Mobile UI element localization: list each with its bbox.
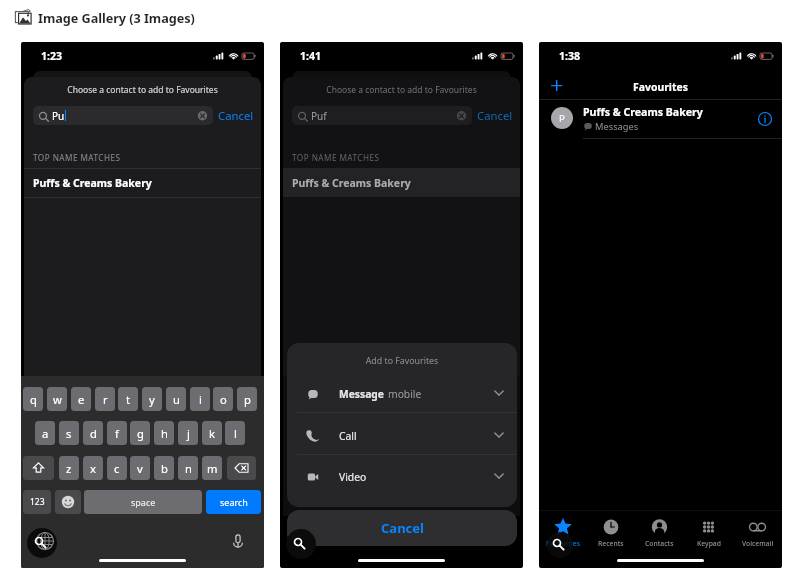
- staticText: Choose a contact to add to Favourites: [283, 84, 520, 96]
- staticText: j: [187, 426, 190, 441]
- staticText: x: [90, 461, 96, 476]
- staticText: Pu: [52, 109, 65, 123]
- button[interactable]: b: [154, 456, 174, 480]
- staticText: Cancel: [381, 519, 424, 537]
- button[interactable]: t: [118, 387, 138, 411]
- button[interactable]: Puf: [292, 106, 472, 125]
- button[interactable]: Cancel: [287, 510, 517, 546]
- staticText: Contacts: [645, 539, 674, 548]
- staticText: Messages: [595, 120, 639, 133]
- button[interactable]: q: [23, 387, 43, 411]
- button[interactable]: l: [225, 421, 245, 445]
- button[interactable]: y: [142, 387, 162, 411]
- button[interactable]: Video: [287, 456, 517, 498]
- button[interactable]: j: [178, 421, 198, 445]
- staticText: t: [126, 392, 131, 407]
- button[interactable]: d: [83, 421, 103, 445]
- staticText: Puffs & Creams Bakery: [33, 176, 152, 190]
- staticText: 1:23: [41, 49, 63, 63]
- staticText: Cancel: [477, 108, 513, 123]
- staticText: Voicemail: [742, 539, 774, 548]
- staticText: g: [137, 426, 144, 441]
- staticText: 1:41: [300, 49, 322, 63]
- staticText: y: [149, 392, 155, 407]
- staticText: Favourites: [546, 539, 580, 548]
- staticText: Image Gallery (3 Images): [38, 9, 195, 26]
- staticText: Video: [339, 470, 367, 484]
- button[interactable]: Recents: [587, 511, 635, 555]
- staticText: w: [53, 392, 62, 407]
- button[interactable]: search: [206, 490, 261, 514]
- staticText: Call: [339, 429, 357, 443]
- staticText: k: [209, 426, 215, 441]
- button[interactable]: m: [202, 456, 222, 480]
- button[interactable]: Cancel: [218, 108, 254, 123]
- button[interactable]: k: [202, 421, 222, 445]
- button[interactable]: [55, 490, 81, 514]
- staticText: m: [207, 461, 218, 476]
- button[interactable]: f: [107, 421, 127, 445]
- staticText: n: [185, 461, 192, 476]
- staticText: v: [137, 461, 143, 476]
- button[interactable]: More info: [755, 109, 775, 129]
- button[interactable]: g: [130, 421, 150, 445]
- staticText: r: [103, 392, 108, 407]
- button[interactable]: [23, 456, 54, 480]
- staticText: Add to Favourites: [287, 355, 517, 367]
- button[interactable]: a: [35, 421, 55, 445]
- button[interactable]: Voicemail: [733, 511, 782, 555]
- button[interactable]: Favourites: [539, 511, 587, 555]
- button[interactable]: Message: [287, 373, 517, 415]
- staticText: b: [161, 461, 168, 476]
- button[interactable]: Cancel: [477, 108, 513, 123]
- staticText: d: [90, 426, 97, 441]
- staticText: search: [220, 496, 248, 508]
- button[interactable]: Add favourite: [545, 77, 573, 95]
- button[interactable]: w: [47, 387, 67, 411]
- staticText: z: [66, 461, 72, 476]
- button[interactable]: Keypad: [684, 511, 733, 555]
- staticText: p: [244, 392, 251, 407]
- staticText: i: [199, 392, 202, 407]
- button[interactable]: Puffs & Creams Bakery: [24, 168, 261, 197]
- staticText: Puffs & Creams Bakery: [583, 105, 703, 119]
- button[interactable]: v: [130, 456, 150, 480]
- staticText: Favourites: [539, 80, 782, 94]
- staticText: c: [114, 461, 120, 476]
- button[interactable]: o: [213, 387, 233, 411]
- button[interactable]: Call: [287, 415, 517, 457]
- staticText: e: [78, 392, 85, 407]
- staticText: 1:38: [559, 49, 581, 63]
- button[interactable]: [227, 456, 256, 480]
- button[interactable]: r: [95, 387, 115, 411]
- staticText: Puffs & Creams Bakery: [292, 176, 411, 190]
- button[interactable]: n: [178, 456, 198, 480]
- button[interactable]: z: [59, 456, 79, 480]
- staticText: h: [161, 426, 168, 441]
- button[interactable]: h: [154, 421, 174, 445]
- staticText: TOP NAME MATCHES: [292, 152, 380, 163]
- button[interactable]: x: [83, 456, 103, 480]
- button[interactable]: e: [71, 387, 91, 411]
- staticText: f: [115, 426, 119, 441]
- staticText: 123: [30, 496, 45, 508]
- button[interactable]: c: [107, 456, 127, 480]
- button[interactable]: s: [59, 421, 79, 445]
- staticText: Choose a contact to add to Favourites: [24, 84, 261, 96]
- button[interactable]: Puffs & Creams Bakery: [283, 168, 520, 197]
- staticText: s: [66, 426, 72, 441]
- button[interactable]: Contacts: [635, 511, 684, 555]
- staticText: q: [30, 392, 37, 407]
- button[interactable]: i: [190, 387, 210, 411]
- staticText: P: [559, 112, 565, 125]
- staticText: u: [173, 392, 180, 407]
- button[interactable]: P: [539, 99, 782, 138]
- staticText: Recents: [598, 539, 624, 548]
- staticText: Puf: [311, 109, 327, 123]
- staticText: l: [234, 426, 237, 441]
- button[interactable]: Pu: [33, 106, 213, 125]
- button[interactable]: 123: [23, 490, 51, 514]
- button[interactable]: u: [166, 387, 186, 411]
- button[interactable]: p: [237, 387, 257, 411]
- button[interactable]: space: [84, 490, 202, 514]
